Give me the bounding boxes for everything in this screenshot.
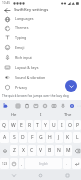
staticText: Z [13, 147, 16, 154]
button[interactable]: Y [42, 120, 49, 130]
button[interactable]: V [37, 145, 45, 156]
button[interactable]: Sound & vibration [0, 72, 81, 82]
button[interactable]: Backspace [73, 145, 81, 156]
button[interactable]: A [0, 132, 9, 143]
staticText: R [28, 122, 32, 129]
button[interactable]: K [64, 132, 72, 143]
staticText: Y [44, 122, 47, 129]
button[interactable]: Toolbar item 3 [31, 101, 40, 110]
staticText: B [48, 147, 52, 154]
button[interactable]: Rich input [0, 52, 81, 62]
staticText: W [11, 122, 16, 129]
staticText: O [68, 122, 72, 129]
button[interactable]: J [55, 132, 63, 143]
button[interactable]: Typing [0, 32, 81, 42]
button[interactable]: Toolbar item 4 [40, 101, 49, 110]
button[interactable]: The quick brown fox jumps over the lazy … [0, 92, 81, 100]
button[interactable]: G [37, 132, 45, 143]
button[interactable]: Q [0, 120, 8, 130]
button[interactable]: Emoji [10, 158, 18, 169]
button[interactable]: F [28, 132, 36, 143]
button[interactable]: U [50, 120, 57, 130]
staticText: H [48, 134, 52, 141]
button[interactable]: W [9, 120, 17, 130]
staticText: I [40, 112, 42, 118]
button[interactable]: R [26, 120, 33, 130]
button[interactable]: Space [25, 158, 62, 169]
staticText: M [66, 147, 71, 154]
button[interactable]: X [19, 145, 27, 156]
button[interactable]: Home [27, 170, 54, 180]
staticText: Sound & vibration [15, 75, 46, 80]
staticText: X [22, 147, 25, 154]
button[interactable]: 123 [0, 158, 9, 169]
staticText: English [39, 162, 48, 166]
button[interactable]: Recents [54, 170, 81, 180]
button[interactable]: Shift [0, 145, 9, 156]
button[interactable]: Emoji [0, 42, 81, 52]
button[interactable]: Toolbar item 2 [22, 101, 31, 110]
staticText: D [21, 134, 25, 141]
staticText: V [39, 147, 43, 154]
button[interactable]: T [34, 120, 41, 130]
staticText: E [20, 122, 23, 129]
button[interactable]: Toolbar item 1 [13, 101, 22, 110]
button[interactable]: Z [10, 145, 18, 156]
button[interactable]: Toolbar item 6 [58, 101, 67, 110]
staticText: K [66, 134, 70, 141]
staticText: U [52, 122, 56, 129]
button[interactable]: O [66, 120, 73, 130]
button[interactable]: Hide keyboard [0, 170, 27, 180]
button[interactable]: Toolbar item 7 [67, 101, 76, 110]
button[interactable]: D [19, 132, 27, 143]
button[interactable]: I [58, 120, 65, 130]
button[interactable]: M [64, 145, 72, 156]
staticText: Emoji [15, 45, 25, 50]
button[interactable]: Scroll down [65, 80, 77, 92]
staticText: Typing [15, 35, 27, 40]
button[interactable]: Languages [0, 14, 81, 23]
staticText: T [36, 122, 39, 129]
staticText: P [76, 122, 80, 129]
staticText: SwiftKey settings [14, 7, 49, 13]
staticText: I [61, 122, 63, 129]
staticText: N [57, 147, 61, 154]
button[interactable]: . [63, 158, 71, 169]
staticText: 10:45 [2, 1, 11, 5]
button[interactable]: , [19, 158, 24, 169]
button[interactable]: L [73, 132, 81, 143]
button[interactable]: Enter [72, 158, 81, 169]
staticText: Themes [15, 25, 29, 30]
staticText: He [11, 112, 17, 118]
staticText: Privacy [15, 85, 27, 90]
button[interactable]: P [74, 120, 81, 130]
staticText: The [64, 112, 72, 118]
button[interactable]: The [54, 110, 81, 119]
staticText: S [13, 134, 16, 141]
staticText: Layout & keys [15, 65, 39, 70]
button[interactable]: C [28, 145, 36, 156]
button[interactable]: B [46, 145, 54, 156]
staticText: G [39, 134, 43, 141]
button[interactable]: Layout & keys [0, 62, 81, 72]
staticText: C [30, 147, 34, 154]
staticText: J [58, 134, 60, 141]
staticText: A [3, 134, 7, 141]
button[interactable]: H [46, 132, 54, 143]
button[interactable]: E [18, 120, 25, 130]
button[interactable]: He [0, 110, 27, 119]
button[interactable]: SwiftKey menu [2, 102, 9, 109]
button[interactable]: Toolbar item 5 [49, 101, 58, 110]
button[interactable]: S [10, 132, 18, 143]
staticText: 123 [2, 162, 8, 166]
button[interactable]: I [27, 110, 54, 119]
staticText: F [31, 134, 34, 141]
staticText: Languages [15, 16, 34, 21]
button[interactable]: N [55, 145, 63, 156]
staticText: L [76, 134, 79, 141]
button[interactable]: Themes [0, 23, 81, 32]
staticText: Q [2, 122, 6, 129]
button[interactable]: Back [0, 6, 14, 14]
button[interactable]: Privacy [0, 82, 81, 92]
